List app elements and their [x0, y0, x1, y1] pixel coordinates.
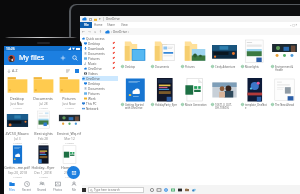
button[interactable]: Sort [63, 66, 72, 75]
staticText: My files [19, 53, 45, 63]
button[interactable]: Taskbar item [169, 186, 176, 193]
button[interactable]: OneDrive [80, 66, 118, 71]
button[interactable]: Cindy Adventure [209, 39, 239, 69]
staticText: Me [72, 188, 77, 192]
button[interactable]: Share [105, 22, 118, 28]
staticText: ↑ [99, 30, 102, 34]
button[interactable]: Pictures [80, 91, 118, 96]
staticText: Pictures [88, 57, 100, 61]
button[interactable]: HolidayParty_flyer [149, 77, 179, 107]
staticText: ∨ [94, 30, 97, 33]
staticText: Recent [22, 188, 31, 192]
button[interactable]: Network [80, 106, 118, 111]
button[interactable]: Taskbar item [190, 186, 197, 193]
staticText: Desktop [10, 96, 24, 101]
staticText: Pictures [62, 96, 76, 101]
staticText: OneDrive [88, 67, 102, 71]
button[interactable]: Me [66, 179, 82, 194]
button[interactable]: Taskbar item [183, 186, 190, 193]
staticText: Movie Generation [185, 103, 207, 107]
staticText: 12 items [65, 107, 74, 110]
staticText: Desktop [88, 82, 101, 86]
staticText: Pictures [185, 65, 195, 69]
button[interactable]: Desktop [119, 39, 149, 69]
staticText: ▾ | OneDrive [99, 17, 120, 21]
button[interactable]: Change view [72, 66, 81, 75]
staticText: template_OneNote [245, 103, 268, 109]
button[interactable]: OneDrive [80, 76, 118, 81]
button[interactable]: Pictures [80, 56, 118, 61]
staticText: 10:26 [6, 46, 15, 51]
button[interactable]: Environment & Health [269, 39, 299, 71]
button[interactable]: Movie Generation [179, 77, 209, 107]
staticText: Environment & Health [275, 65, 298, 71]
staticText: Documents [155, 65, 169, 69]
button[interactable]: Pictures [179, 39, 209, 69]
staticText: Documents [88, 87, 105, 91]
staticText: Shared [37, 188, 47, 192]
button[interactable]: Moonlights [239, 39, 269, 69]
staticText: Just Now [10, 102, 24, 106]
staticText: Getting Started with OneDrive [125, 103, 148, 109]
button[interactable]: Downloads [80, 46, 118, 51]
button[interactable]: Taskbar item [155, 186, 162, 193]
button[interactable]: Account [8, 55, 15, 62]
staticText: – □ × [290, 23, 298, 27]
staticText: The New Ahead [275, 103, 295, 107]
button[interactable]: Holiday...flyer [30, 145, 56, 179]
button[interactable]: Type here to search [88, 187, 144, 193]
button[interactable]: Photos [50, 179, 66, 194]
button[interactable]: Getting Started with OneDrive [119, 77, 149, 109]
button[interactable]: 4VC50_Mauro [4, 111, 30, 145]
button[interactable]: Documents [149, 39, 179, 69]
button[interactable]: Files [4, 179, 19, 194]
button[interactable]: This PC [80, 101, 118, 106]
button[interactable]: Documents [80, 51, 118, 56]
button[interactable]: Taskbar item [162, 186, 169, 193]
button[interactable]: View [118, 22, 131, 28]
button[interactable]: Desktop [80, 41, 118, 46]
staticText: Documents [33, 96, 53, 101]
button[interactable]: File [80, 22, 92, 28]
staticText: Cindy Adventure [215, 65, 236, 69]
button[interactable]: Recent [19, 179, 34, 194]
button[interactable]: Add [67, 166, 80, 179]
button[interactable]: template_OneNote [239, 77, 269, 109]
button[interactable]: Videos [80, 71, 118, 76]
staticText: Moonlights [245, 65, 259, 69]
button[interactable]: 10671-0_OUT-OH-7094 N-DAILY.RT [209, 77, 239, 109]
staticText: Downloads [88, 47, 105, 51]
button[interactable]: Home [92, 22, 105, 28]
button[interactable]: Desktop [4, 76, 30, 110]
staticText: 📌 [112, 57, 116, 60]
button[interactable]: Gettin...me.pdf [4, 145, 30, 179]
button[interactable]: A-Z [7, 68, 18, 73]
staticText: HomeFi... [61, 165, 77, 170]
staticText: Documents [88, 52, 105, 56]
button[interactable]: Documents [80, 86, 118, 91]
staticText: Desktop [125, 65, 136, 69]
staticText: A-Z [12, 68, 18, 73]
button[interactable]: Search [69, 52, 81, 64]
staticText: 12 items [39, 176, 48, 179]
button[interactable]: The New Ahead [269, 77, 299, 107]
staticText: 12 items [13, 107, 22, 110]
staticText: Photos [53, 188, 63, 192]
staticText: Music [88, 62, 97, 66]
button[interactable]: Documents [30, 76, 56, 110]
button[interactable]: Desktop [80, 81, 118, 86]
button[interactable]: Work [80, 96, 118, 101]
button[interactable]: Envirot_Wq.rtf [56, 111, 82, 145]
button[interactable]: Music [80, 61, 118, 66]
button[interactable]: Quick access [80, 36, 118, 41]
button[interactable]: Shared [34, 179, 50, 194]
button[interactable]: Taskbar item [176, 186, 183, 193]
staticText: This PC [86, 102, 97, 106]
button[interactable]: Best sights [30, 111, 56, 145]
button[interactable]: HomeFi... [56, 145, 82, 179]
button[interactable]: Pictures [56, 76, 82, 110]
staticText: Gettin...me.pdf [4, 165, 30, 170]
button[interactable]: Add [57, 52, 69, 64]
button[interactable]: Taskbar item [148, 186, 155, 193]
